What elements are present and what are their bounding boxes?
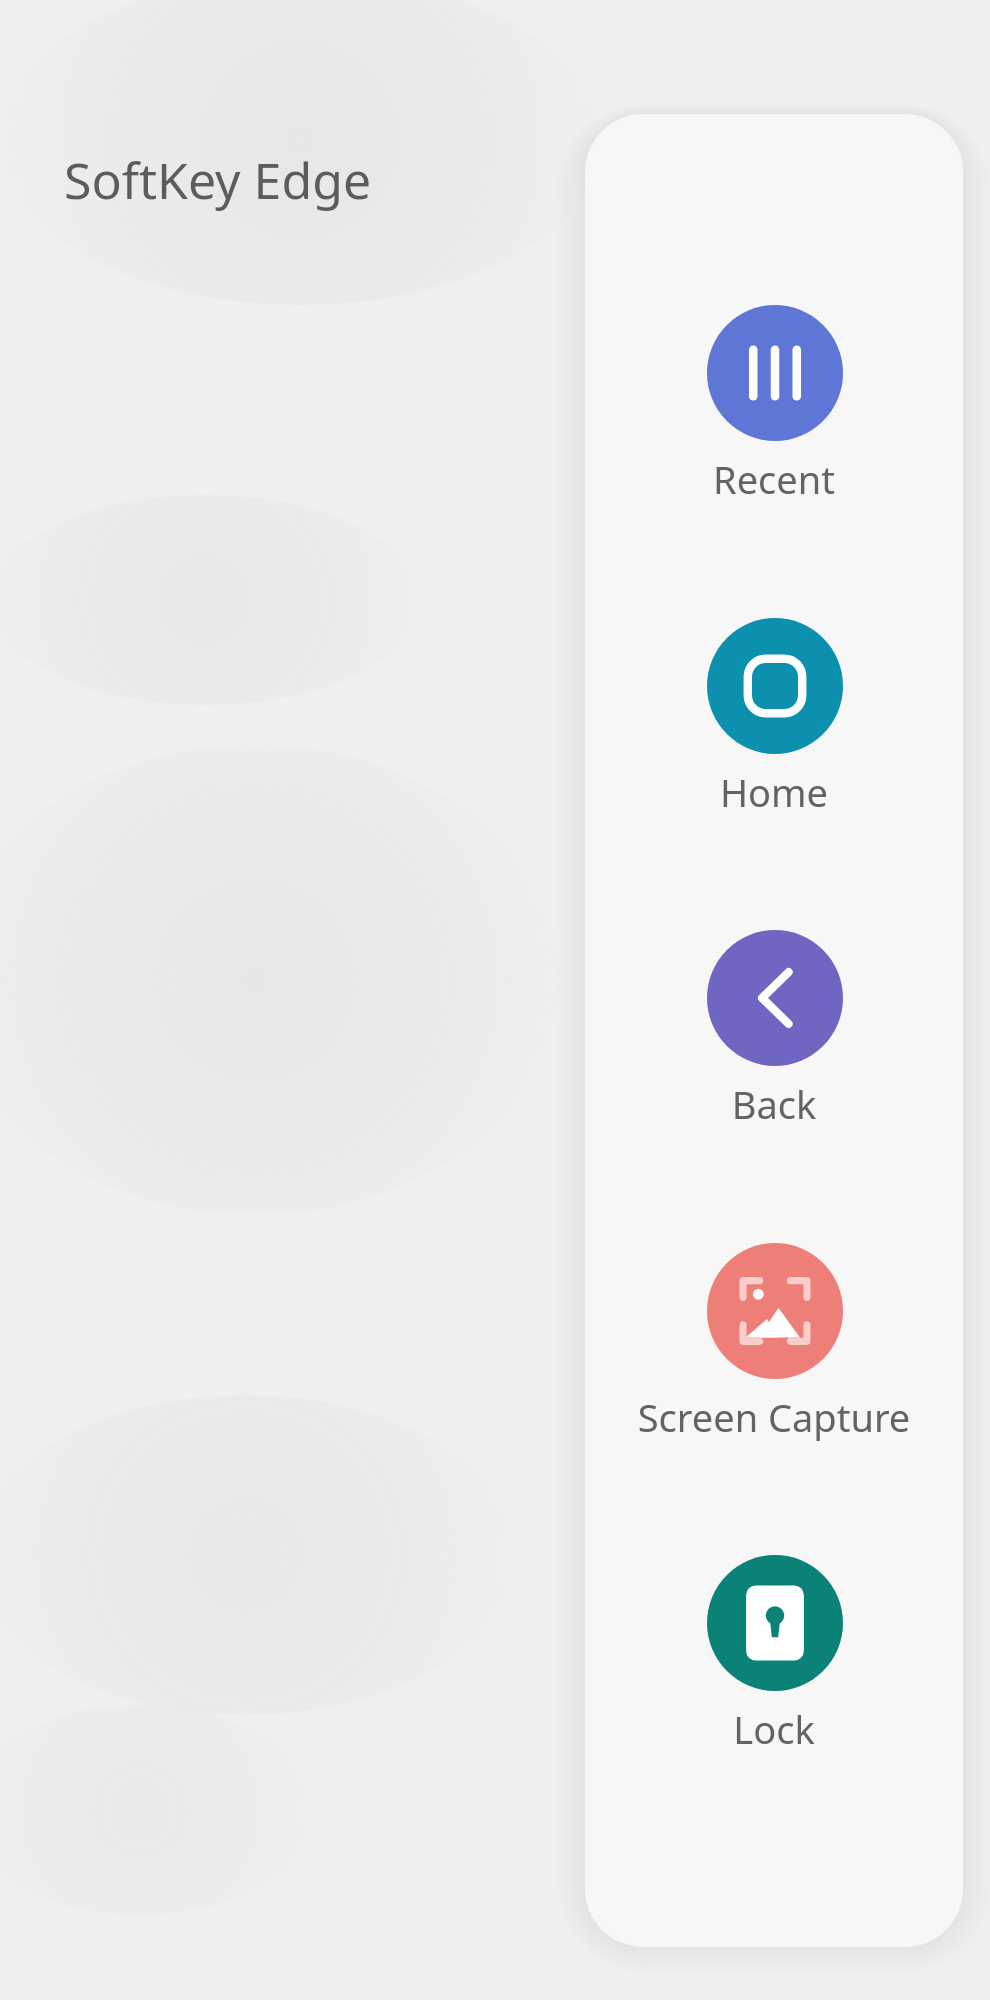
other: Screen Capture (707, 1243, 843, 1379)
other: Back (707, 930, 843, 1066)
staticText: Lock (585, 1703, 963, 1755)
staticText: Recent (585, 453, 963, 505)
button[interactable]: Home (585, 602, 963, 820)
other: Home (707, 618, 843, 754)
staticText: Screen Capture (585, 1391, 963, 1443)
button[interactable]: Screen Capture (585, 1227, 963, 1445)
other: Recent (707, 305, 843, 441)
button[interactable]: Lock (585, 1539, 963, 1757)
staticText: Back (585, 1078, 963, 1130)
button[interactable]: Back (585, 914, 963, 1132)
staticText: SoftKey Edge (64, 146, 372, 214)
other: Lock (707, 1555, 843, 1691)
button[interactable]: Recent (585, 289, 963, 507)
staticText: Home (585, 766, 963, 818)
